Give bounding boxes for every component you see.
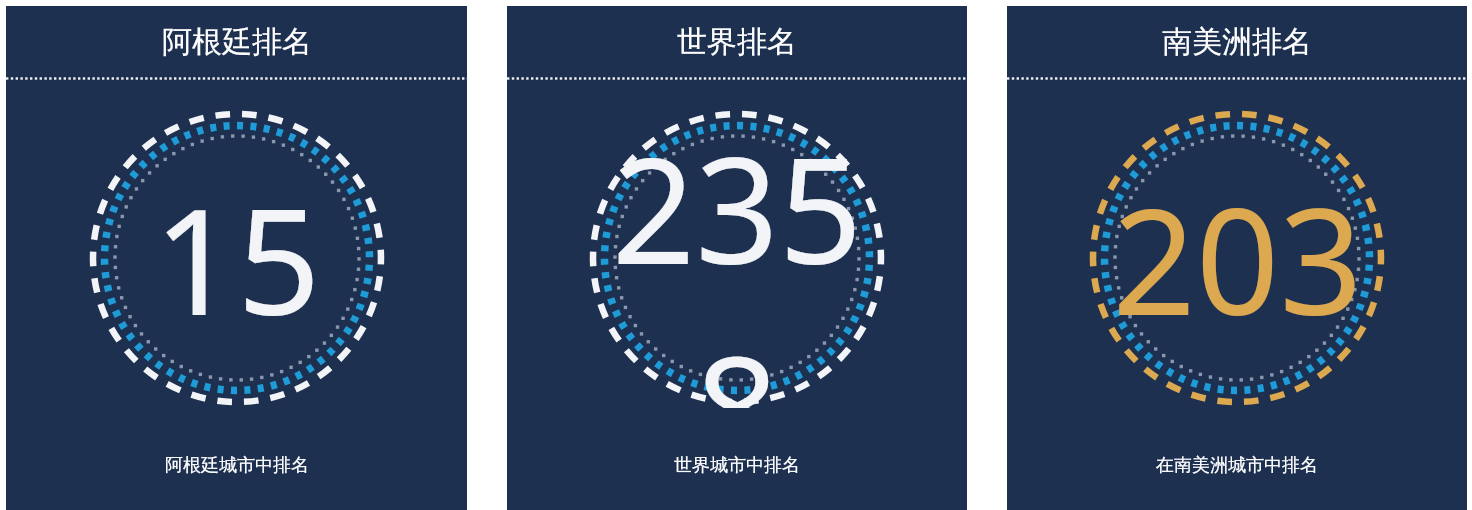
staticText: 阿根廷排名	[162, 23, 312, 61]
staticText: 世界排名	[677, 23, 797, 61]
staticText: 2358	[587, 108, 887, 408]
staticText: 15	[153, 159, 321, 358]
staticText: 南美洲排名	[1162, 23, 1312, 61]
button[interactable]: 阿根廷排名 15	[6, 6, 467, 510]
staticText: 阿根廷城市中排名	[165, 454, 309, 477]
staticText: 世界城市中排名	[674, 454, 800, 477]
button[interactable]: 南美洲排名 203	[1007, 6, 1467, 510]
staticText: 203	[1112, 159, 1363, 358]
button[interactable]: 世界排名 2358	[507, 6, 967, 510]
staticText: 在南美洲城市中排名	[1156, 454, 1318, 477]
